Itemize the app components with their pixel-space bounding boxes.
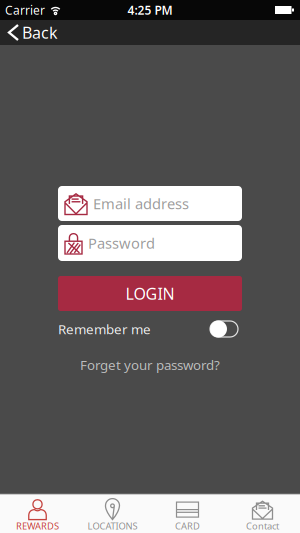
button[interactable]: Remember me (210, 320, 238, 338)
button[interactable]: CARD (150, 500, 225, 532)
staticText: Email address (93, 194, 189, 213)
staticText: Back (22, 22, 58, 43)
staticText: Password (88, 233, 155, 253)
staticText: CARD (175, 520, 200, 532)
button[interactable]: Email address (58, 186, 242, 221)
button[interactable]: Contact (225, 500, 300, 532)
staticText: LOGIN (125, 283, 174, 304)
staticText: Carrier (5, 2, 45, 18)
button[interactable]: Password (58, 225, 242, 261)
staticText: Contact (246, 520, 279, 532)
button[interactable]: LOGIN (58, 276, 242, 311)
button[interactable]: Back (0, 22, 58, 43)
staticText: 4:25 PM (127, 2, 172, 18)
staticText: Remember me (58, 320, 151, 338)
button[interactable]: REWARDS (0, 500, 75, 532)
button[interactable]: LOCATIONS (75, 500, 150, 532)
staticText: LOCATIONS (87, 520, 137, 532)
staticText: Forget your password? (80, 356, 220, 374)
button[interactable]: Forget your password? (80, 356, 220, 374)
staticText: REWARDS (16, 520, 59, 532)
